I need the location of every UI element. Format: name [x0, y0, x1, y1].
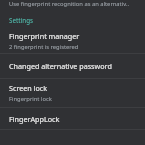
button[interactable]: Screen lock — [0, 79, 145, 107]
button[interactable]: Fingerprint manager — [0, 28, 145, 53]
button[interactable]: FingerAppLock — [0, 108, 145, 129]
staticText: FingerAppLock — [9, 114, 60, 124]
staticText: Screen lock — [9, 83, 48, 93]
button[interactable]: Changed alternative password — [0, 54, 145, 78]
staticText: Use fingerprint recognition as an altern… — [9, 0, 130, 8]
staticText: Changed alternative password — [9, 61, 112, 71]
staticText: Fingerprint lock — [9, 95, 52, 103]
staticText: 2 fingerprint is registered — [9, 43, 79, 51]
staticText: Settings — [9, 16, 34, 24]
staticText: Fingerprint manager — [9, 31, 80, 41]
